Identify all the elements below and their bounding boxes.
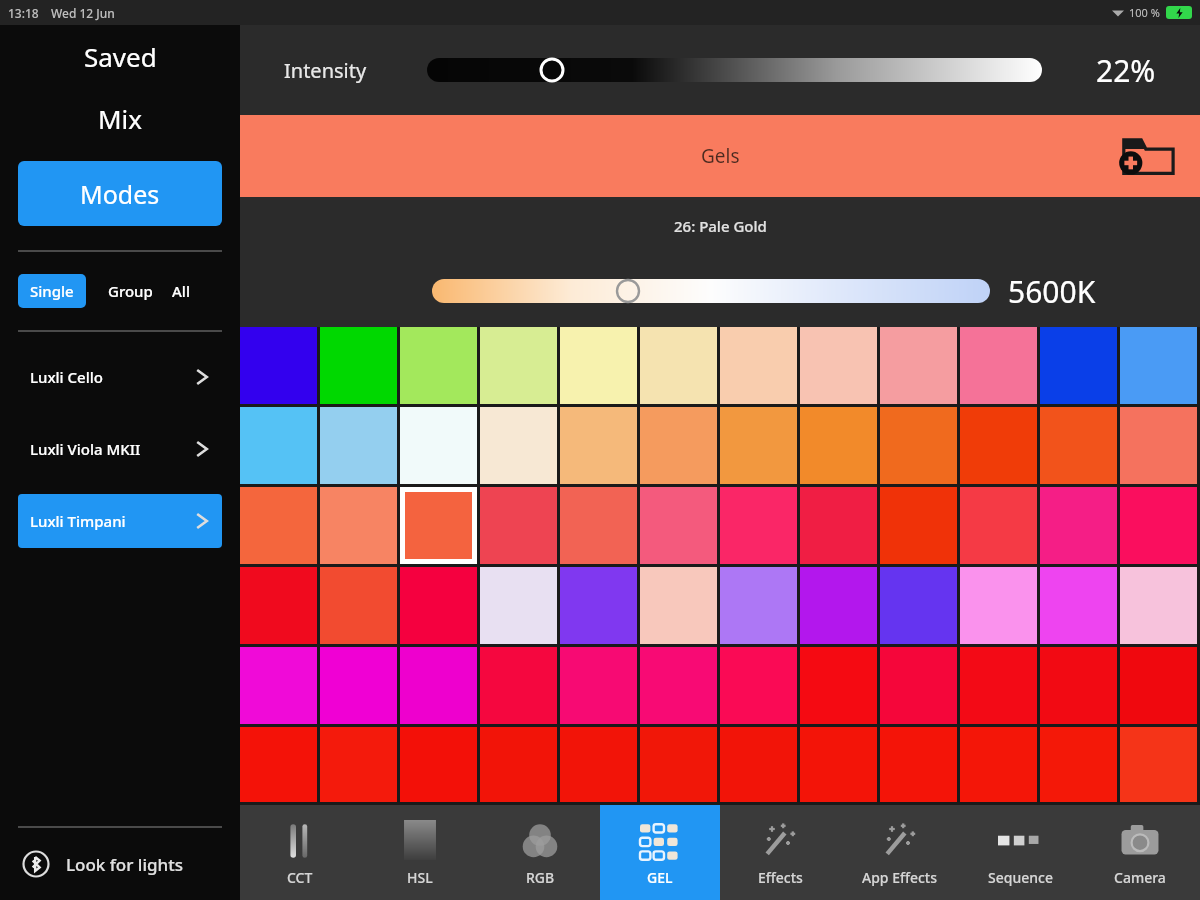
button[interactable]: All xyxy=(162,274,200,308)
button[interactable]: Look for lights xyxy=(0,828,240,900)
button[interactable]: Luxli Timpani xyxy=(18,494,222,548)
button[interactable]: Camera xyxy=(1080,805,1200,900)
button[interactable]: Group xyxy=(104,274,157,308)
button[interactable]: Luxli Cello xyxy=(18,350,222,404)
button[interactable]: Modes xyxy=(18,161,222,226)
button[interactable] xyxy=(427,58,1042,82)
staticText: Saved xyxy=(84,39,157,74)
button[interactable]: Gels xyxy=(240,115,1200,197)
staticText: Mix xyxy=(98,101,143,136)
staticText: 5600K xyxy=(1008,271,1096,312)
staticText: Gels xyxy=(701,143,740,169)
button[interactable] xyxy=(432,279,990,303)
button[interactable]: Sequence xyxy=(960,805,1080,900)
button[interactable]: Luxli Viola MKII xyxy=(18,422,222,476)
button[interactable]: Effects xyxy=(720,805,840,900)
button[interactable]: HSL xyxy=(360,805,480,900)
staticText: Sequence xyxy=(988,868,1053,887)
staticText: Luxli Viola MKII xyxy=(30,439,141,459)
button[interactable]: RGB xyxy=(480,805,600,900)
button[interactable]: CCT xyxy=(240,805,360,900)
button[interactable]: Single xyxy=(18,274,86,308)
button[interactable]: GEL xyxy=(600,805,720,900)
button[interactable]: App Effects xyxy=(840,805,960,900)
button[interactable]: Mix xyxy=(0,87,240,149)
button[interactable]: Saved xyxy=(0,25,240,87)
button[interactable]: Add gel folder xyxy=(1118,127,1176,185)
